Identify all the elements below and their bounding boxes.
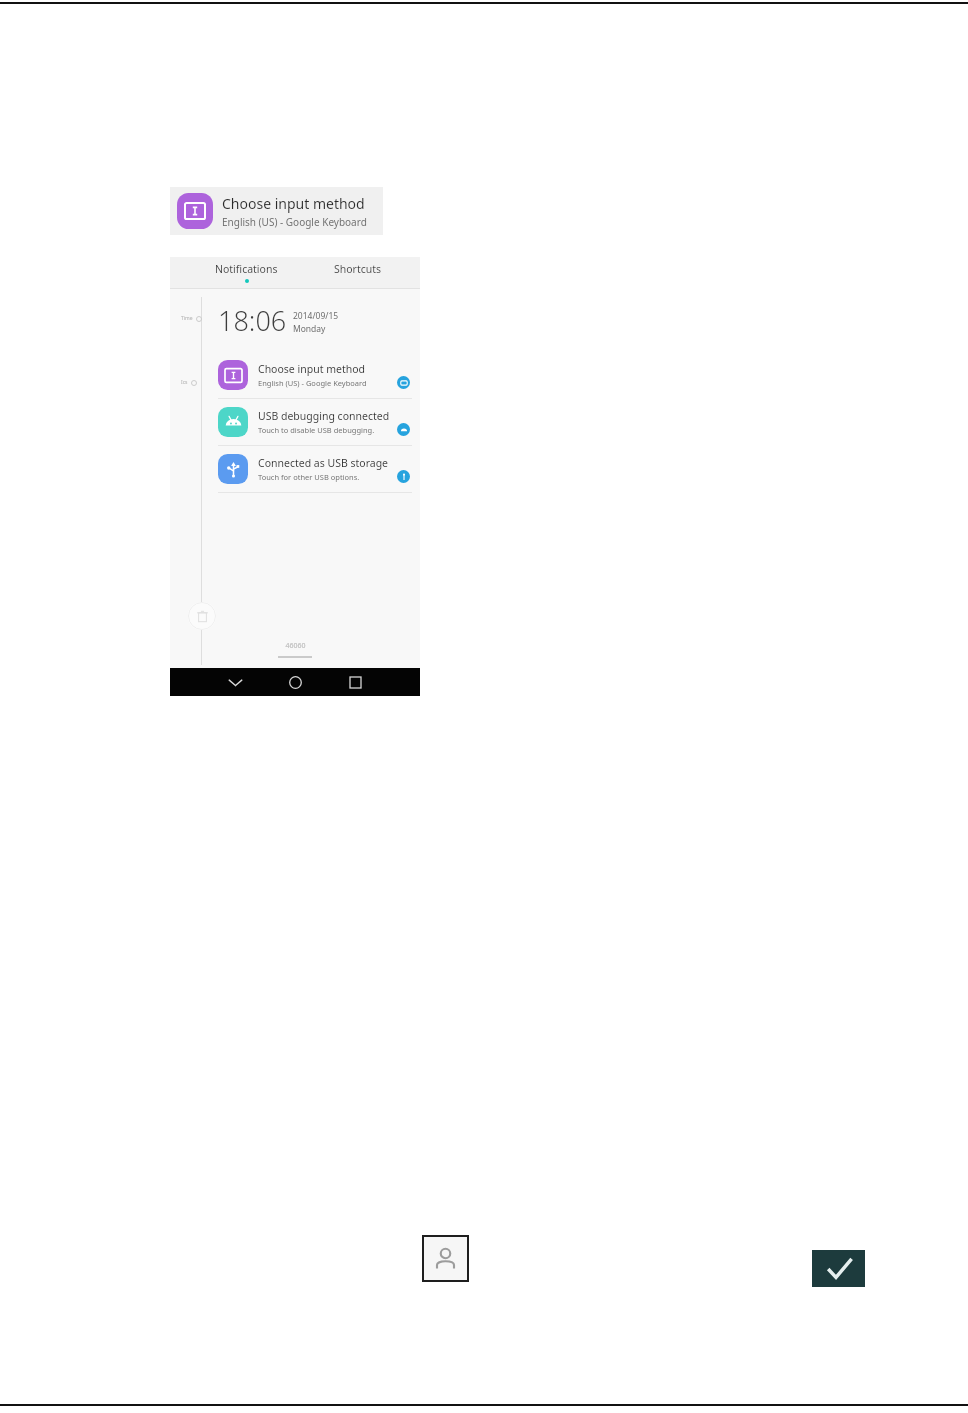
button[interactable]: USB debugging connected: [170, 399, 420, 445]
staticText: Monday: [293, 323, 326, 335]
staticText: Touch to disable USB debugging.: [258, 425, 375, 435]
staticText: 2014/09/15: [293, 310, 339, 322]
button[interactable]: Choose input method: [170, 187, 383, 235]
staticText: Time: [181, 315, 193, 322]
staticText: Choose input method: [222, 194, 365, 213]
button[interactable]: Notifications: [190, 257, 302, 288]
staticText: Connected as USB storage: [258, 456, 389, 470]
staticText: 18:06: [218, 302, 287, 339]
button[interactable]: Confirm: [812, 1250, 865, 1287]
button[interactable]: Account: [422, 1235, 469, 1282]
staticText: USB debugging connected: [258, 409, 390, 423]
button[interactable]: Recents: [336, 668, 374, 696]
staticText: English (US) - Google Keyboard: [222, 215, 367, 229]
button[interactable]: Back: [216, 668, 254, 696]
button[interactable]: Home: [276, 668, 314, 696]
button[interactable]: Shortcuts: [306, 257, 410, 288]
button[interactable]: Connected as USB storage: [170, 446, 420, 492]
staticText: English (US) - Google Keyboard: [258, 378, 367, 388]
button[interactable]: Choose input method: [170, 352, 420, 398]
staticText: Notifications: [215, 262, 278, 276]
staticText: 46060: [285, 641, 306, 651]
staticText: Shortcuts: [334, 262, 382, 276]
staticText: Touch for other USB options.: [258, 472, 360, 482]
staticText: Ics: [181, 379, 188, 386]
staticText: Choose input method: [258, 362, 366, 376]
button[interactable]: Clear all notifications: [188, 602, 216, 630]
